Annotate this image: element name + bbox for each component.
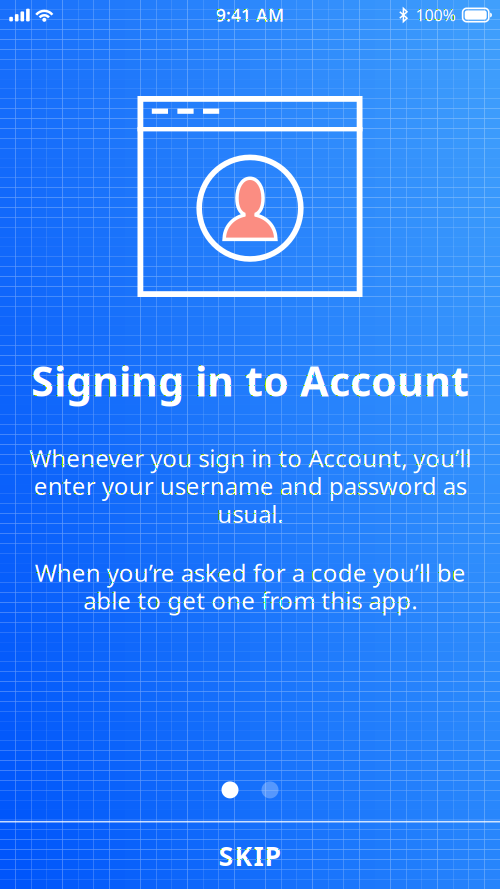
staticText: 9:41 AM xyxy=(216,3,284,26)
staticText: 100% xyxy=(416,4,456,26)
staticText: When you’re asked for a code you’ll be a… xyxy=(34,556,465,616)
staticText: Whenever you sign in to Account, you’ll … xyxy=(29,442,471,529)
button[interactable]: SKIP xyxy=(0,822,500,889)
staticText: SKIP xyxy=(218,838,281,873)
staticText: Signing in to Account xyxy=(31,353,469,408)
